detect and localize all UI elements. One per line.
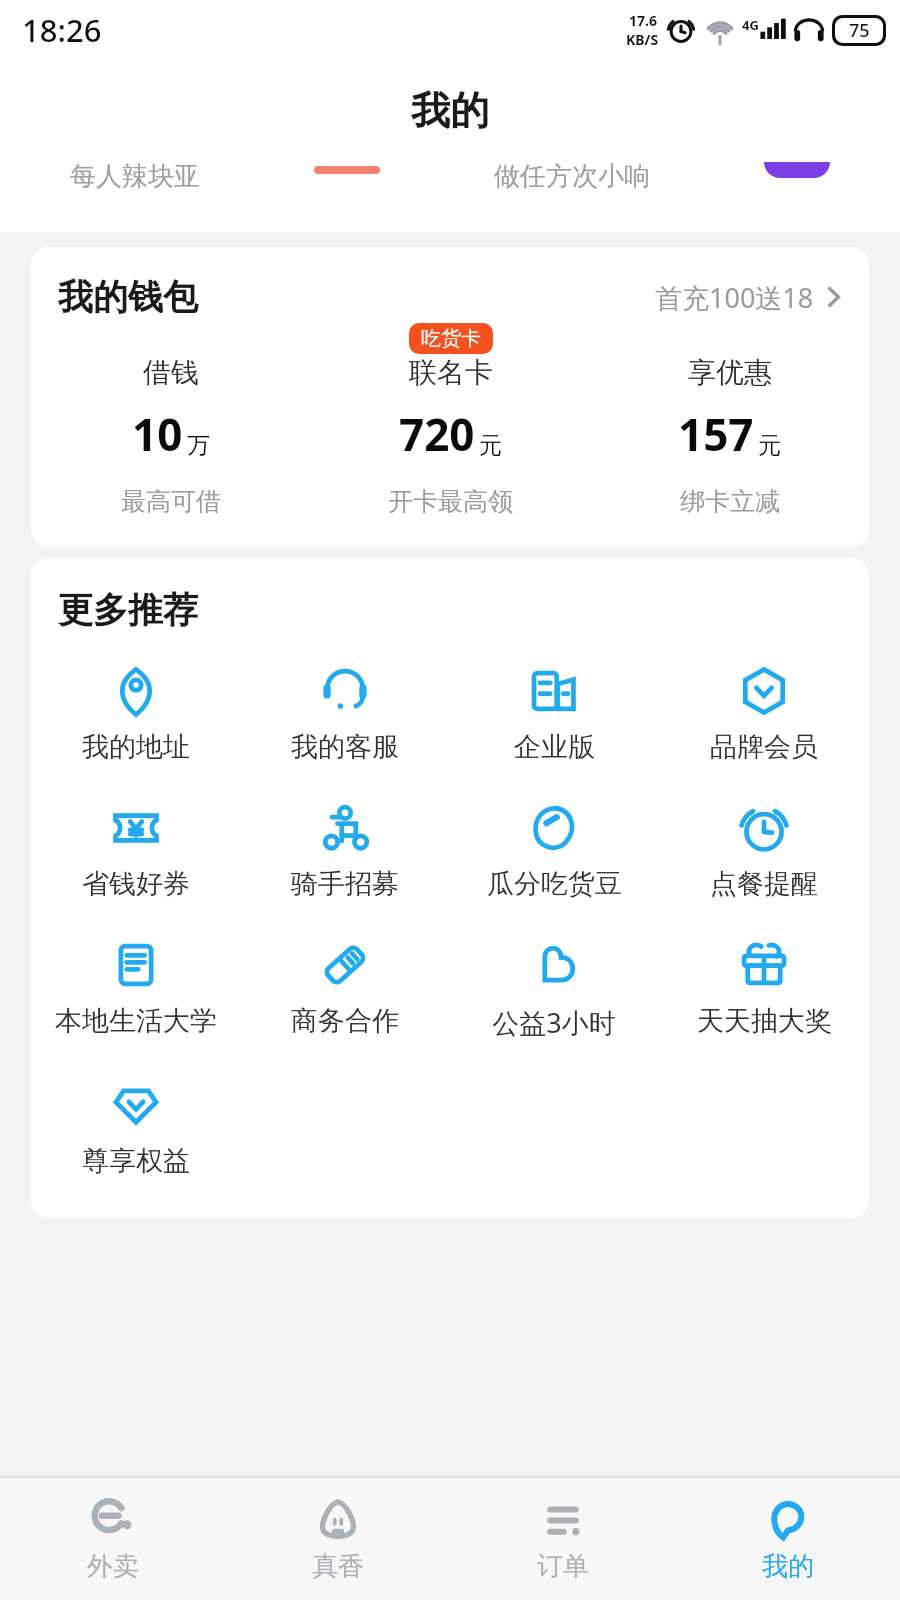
- button[interactable]: 点餐提醒: [659, 801, 869, 901]
- staticText: 品牌会员: [710, 730, 818, 764]
- staticText: 商务合作: [291, 1004, 399, 1038]
- button[interactable]: 我的地址: [31, 664, 240, 764]
- staticText: 万: [187, 431, 210, 460]
- button[interactable]: 企业版: [449, 664, 659, 764]
- staticText: 10: [132, 404, 183, 464]
- staticText: 真香: [312, 1550, 364, 1583]
- staticText: 我的: [762, 1550, 814, 1583]
- button[interactable]: 省钱好券: [31, 801, 240, 901]
- staticText: 联名卡: [409, 355, 493, 390]
- staticText: 骑手招募: [291, 867, 399, 901]
- button[interactable]: 借钱: [31, 321, 311, 517]
- staticText: 最高可借: [121, 486, 221, 517]
- staticText: 元: [758, 431, 781, 460]
- staticText: 企业版: [514, 730, 595, 764]
- button[interactable]: 天天抽大奖: [659, 938, 869, 1038]
- staticText: 吃货卡: [421, 326, 481, 351]
- button[interactable]: 尊享权益: [31, 1078, 240, 1178]
- button[interactable]: 公益3小时: [449, 938, 659, 1041]
- button[interactable]: 我的钱包: [31, 275, 869, 319]
- button[interactable]: 瓜分吃货豆: [449, 801, 659, 901]
- staticText: 享优惠: [688, 355, 772, 390]
- staticText: 75: [849, 18, 870, 43]
- staticText: 我的: [411, 86, 489, 135]
- staticText: 元: [479, 431, 502, 460]
- button[interactable]: 我的: [675, 1486, 900, 1593]
- button[interactable]: 真香: [225, 1486, 450, 1593]
- staticText: 尊享权益: [82, 1144, 190, 1178]
- button[interactable]: 商务合作: [240, 938, 449, 1038]
- button[interactable]: 本地生活大学: [31, 938, 240, 1038]
- staticText: 4G: [742, 16, 759, 34]
- staticText: 天天抽大奖: [697, 1004, 832, 1038]
- button[interactable]: 享优惠: [590, 321, 869, 517]
- staticText: 订单: [537, 1550, 589, 1583]
- staticText: 做任方次小响: [494, 160, 650, 193]
- staticText: 我的钱包: [58, 275, 198, 319]
- staticText: 更多推荐: [58, 588, 198, 632]
- staticText: 借钱: [143, 355, 199, 390]
- staticText: 17.6: [629, 11, 657, 30]
- staticText: 外卖: [87, 1550, 139, 1583]
- staticText: 720: [399, 404, 475, 464]
- staticText: 157: [678, 404, 754, 464]
- button[interactable]: 外卖: [0, 1486, 225, 1593]
- staticText: 本地生活大学: [55, 1004, 217, 1038]
- button[interactable]: 骑手招募: [240, 801, 449, 901]
- staticText: 每人辣块亚: [70, 160, 200, 193]
- button[interactable]: 我的客服: [240, 664, 449, 764]
- button[interactable]: 订单: [450, 1486, 675, 1593]
- button[interactable]: 吃货卡: [311, 321, 590, 517]
- staticText: 点餐提醒: [710, 867, 818, 901]
- staticText: 首充100送18: [655, 279, 814, 316]
- staticText: 我的客服: [291, 730, 399, 764]
- staticText: 我的地址: [82, 730, 190, 764]
- staticText: 绑卡立减: [680, 486, 780, 517]
- staticText: 瓜分吃货豆: [487, 867, 622, 901]
- staticText: KB/S: [626, 30, 659, 49]
- staticText: 省钱好券: [82, 867, 190, 901]
- staticText: 公益3小时: [492, 1004, 616, 1041]
- staticText: 18:26: [22, 9, 102, 51]
- staticText: 开卡最高领: [388, 486, 513, 517]
- button[interactable]: 品牌会员: [659, 664, 869, 764]
